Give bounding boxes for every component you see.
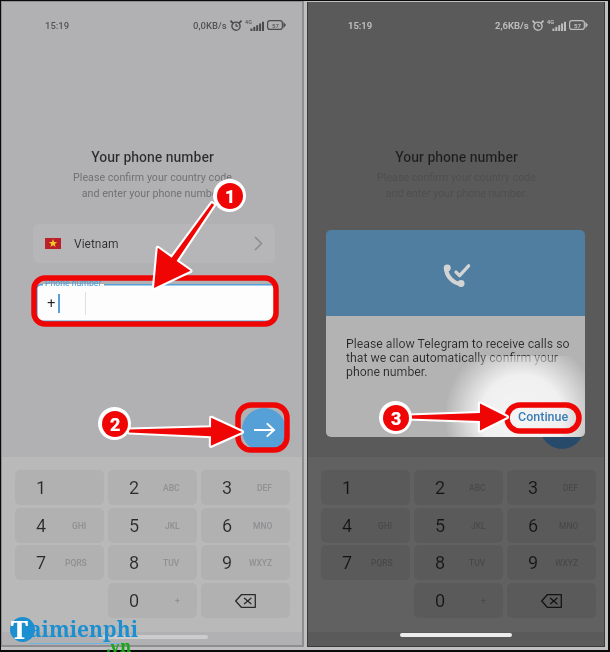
button[interactable]: 0	[108, 583, 197, 618]
button[interactable]: 3	[201, 470, 290, 505]
button[interactable]	[36, 284, 276, 322]
button[interactable]: 4	[15, 508, 104, 543]
staticText: GHI	[378, 521, 393, 531]
staticText: 2	[435, 477, 446, 498]
staticText: GHI	[72, 521, 87, 531]
staticText: DEF	[563, 483, 579, 493]
staticText: 0	[435, 590, 446, 611]
staticText: Phone number	[45, 278, 102, 288]
staticText: .vn	[106, 634, 132, 652]
staticText: Continue	[518, 409, 569, 424]
staticText: ABC	[469, 483, 486, 493]
staticText: 15:19	[348, 20, 373, 31]
button[interactable]: 9	[507, 545, 596, 580]
staticText: JKL	[471, 521, 486, 531]
staticText: 15:19	[45, 20, 70, 31]
button[interactable]: 2	[108, 470, 197, 505]
staticText: JKL	[165, 521, 180, 531]
staticText: Your phone number	[395, 149, 518, 165]
staticText: 0,0KB/s	[193, 20, 227, 31]
staticText: 4G	[245, 19, 252, 25]
staticText: 1	[342, 477, 353, 498]
staticText: 3	[391, 408, 402, 429]
button[interactable]: 5	[414, 508, 503, 543]
staticText: Please confirm your country code and ent…	[377, 171, 536, 199]
button[interactable]: 8	[414, 545, 503, 580]
staticText: ABC	[163, 483, 180, 493]
staticText: Please allow Telegram to receive calls s…	[346, 337, 570, 379]
staticText: Please confirm your country code and ent…	[73, 171, 232, 199]
staticText: 57	[574, 22, 581, 29]
staticText: +	[175, 596, 180, 606]
button[interactable]: 1	[321, 470, 410, 505]
staticText: 3	[528, 477, 539, 498]
staticText: 7	[342, 552, 353, 573]
staticText: 8	[129, 552, 140, 573]
button[interactable]: 8	[108, 545, 197, 580]
button[interactable]: 6	[507, 508, 596, 543]
staticText: 0	[129, 590, 140, 611]
button[interactable]: 6	[201, 508, 290, 543]
staticText: 2	[129, 477, 140, 498]
button[interactable]: 0	[414, 583, 503, 618]
staticText: TUV	[163, 558, 180, 568]
staticText: WXYZ	[249, 558, 273, 568]
button[interactable]: Backspace	[507, 583, 596, 618]
button[interactable]: 7	[15, 545, 104, 580]
staticText: T	[11, 611, 28, 646]
staticText: DEF	[257, 483, 273, 493]
button[interactable]: 4	[321, 508, 410, 543]
button[interactable]: 2	[414, 470, 503, 505]
staticText: WXYZ	[555, 558, 579, 568]
staticText: 57	[272, 22, 279, 29]
staticText: +	[481, 596, 486, 606]
staticText: Vietnam	[74, 237, 119, 251]
staticText: MNO	[253, 521, 273, 531]
staticText: 7	[36, 552, 47, 573]
button[interactable]: Next	[242, 408, 286, 452]
staticText: 1	[225, 186, 236, 207]
staticText: 4	[36, 515, 47, 536]
staticText: Your phone number	[91, 149, 214, 165]
staticText: 6	[222, 515, 233, 536]
button[interactable]: Backspace	[201, 583, 290, 618]
staticText: PQRS	[65, 558, 87, 568]
staticText: PQRS	[371, 558, 393, 568]
staticText: MNO	[559, 521, 579, 531]
button[interactable]: 3	[507, 470, 596, 505]
button[interactable]: 5	[108, 508, 197, 543]
staticText: TUV	[469, 558, 486, 568]
staticText: 9	[222, 552, 233, 573]
staticText: 4	[342, 515, 353, 536]
staticText: 4G	[547, 19, 554, 25]
staticText: 9	[528, 552, 539, 573]
staticText: 8	[435, 552, 446, 573]
staticText: 2	[110, 414, 121, 435]
staticText: aimienphi	[29, 615, 139, 644]
button[interactable]: 1	[15, 470, 104, 505]
button[interactable]: 9	[201, 545, 290, 580]
staticText: 5	[129, 515, 140, 536]
staticText: 5	[435, 515, 446, 536]
staticText: 2,6KB/s	[495, 20, 529, 31]
staticText: 1	[36, 477, 47, 498]
staticText: +	[47, 294, 56, 312]
button[interactable]: 7	[321, 545, 410, 580]
button[interactable]: Vietnam	[33, 224, 275, 263]
button[interactable]: Continue	[506, 402, 580, 430]
staticText: 3	[222, 477, 233, 498]
staticText: 6	[528, 515, 539, 536]
